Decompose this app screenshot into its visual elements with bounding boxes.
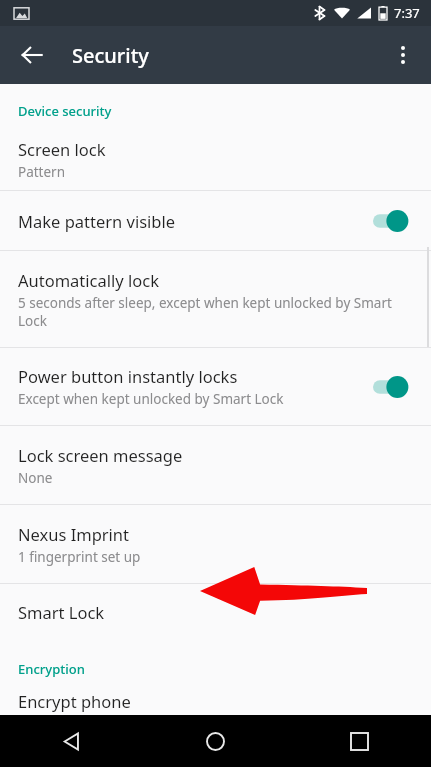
staticText: Security	[72, 42, 149, 69]
staticText: Encryption	[18, 660, 85, 678]
staticText: Make pattern visible	[18, 210, 176, 232]
button[interactable]: Power button instantly locks	[0, 348, 431, 425]
staticText: Lock screen message	[18, 444, 183, 466]
button[interactable]: Automatically lock	[0, 251, 431, 347]
staticText: Pattern	[18, 163, 66, 181]
staticText: Device security	[18, 102, 112, 120]
staticText: Screen lock	[18, 138, 106, 160]
button[interactable]: Recent apps	[287, 715, 431, 767]
button[interactable]: Back	[8, 31, 56, 79]
button[interactable]: Nexus Imprint	[0, 505, 431, 583]
button[interactable]: Toggle Make pattern visible	[367, 204, 419, 238]
staticText: Smart Lock	[18, 601, 105, 623]
staticText: Nexus Imprint	[18, 523, 130, 545]
staticText: 5 seconds after sleep, except when kept …	[18, 294, 392, 330]
staticText: Encrypt phone	[18, 690, 131, 712]
button[interactable]: Make pattern visible	[0, 191, 431, 250]
button[interactable]: Smart Lock	[0, 584, 431, 640]
staticText: 7:37	[394, 4, 420, 22]
button[interactable]: Home	[143, 715, 287, 767]
button[interactable]: Screen lock	[0, 128, 431, 190]
button[interactable]: Toggle Power button instantly locks	[367, 370, 419, 404]
button[interactable]: More options	[379, 31, 427, 79]
button[interactable]: Encrypt phone	[0, 686, 431, 715]
button[interactable]: Lock screen message	[0, 426, 431, 504]
staticText: Except when kept unlocked by Smart Lock	[18, 390, 284, 408]
staticText: None	[18, 469, 53, 487]
button[interactable]: Back	[0, 715, 143, 767]
staticText: Power button instantly locks	[18, 365, 238, 387]
staticText: 1 fingerprint set up	[18, 548, 141, 566]
staticText: Automatically lock	[18, 269, 159, 291]
